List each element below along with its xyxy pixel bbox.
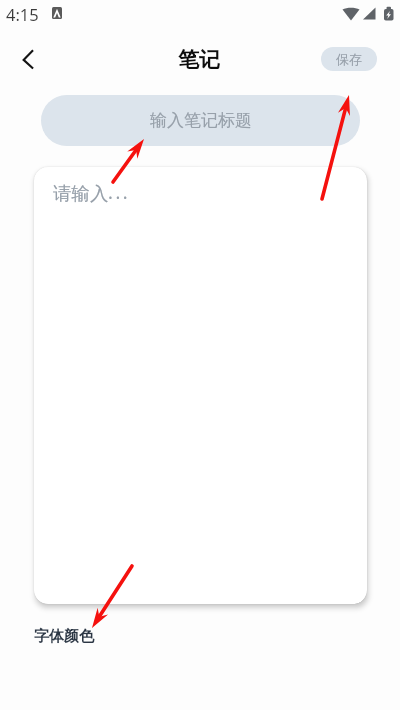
- button[interactable]: 字体颜色: [34, 627, 94, 646]
- button[interactable]: 输入笔记标题: [41, 95, 360, 146]
- button[interactable]: 保存: [321, 47, 377, 71]
- staticText: 笔记: [178, 47, 220, 73]
- staticText: 4:15: [6, 3, 39, 25]
- staticText: 输入笔记标题: [150, 110, 252, 131]
- staticText: 请输入: [53, 182, 109, 205]
- button[interactable]: Back: [6, 38, 48, 80]
- staticText: ...: [108, 180, 131, 205]
- button[interactable]: 请输入: [34, 167, 367, 604]
- staticText: 保存: [336, 51, 362, 67]
